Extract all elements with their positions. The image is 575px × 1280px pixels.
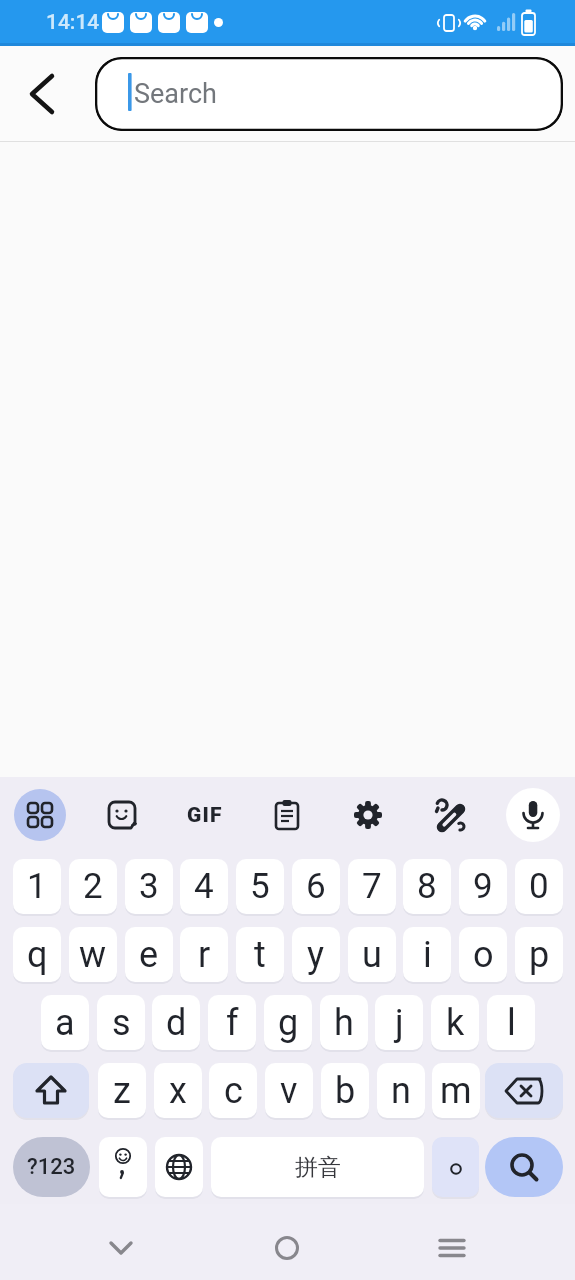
button[interactable]: x: [154, 1063, 202, 1118]
staticText: 14:14: [46, 10, 100, 35]
button[interactable]: [155, 1137, 203, 1197]
button[interactable]: [13, 1063, 89, 1118]
staticText: u: [362, 934, 382, 976]
button[interactable]: l: [487, 995, 535, 1050]
button[interactable]: q: [13, 927, 61, 982]
button[interactable]: j: [375, 995, 423, 1050]
button[interactable]: [263, 1224, 311, 1272]
button[interactable]: 8: [403, 859, 451, 914]
button[interactable]: [485, 1063, 563, 1118]
staticText: i: [423, 934, 432, 976]
staticText: 1: [27, 866, 47, 907]
staticText: n: [391, 1070, 411, 1112]
button[interactable]: y: [292, 927, 340, 982]
button[interactable]: 9: [459, 859, 507, 914]
button[interactable]: 1: [13, 859, 61, 914]
staticText: 5: [250, 866, 270, 907]
staticText: h: [334, 1002, 354, 1044]
button[interactable]: e: [125, 927, 173, 982]
button[interactable]: r: [180, 927, 228, 982]
button[interactable]: [99, 1137, 147, 1197]
staticText: y: [307, 934, 325, 976]
button[interactable]: u: [348, 927, 396, 982]
button[interactable]: 5: [236, 859, 284, 914]
staticText: d: [166, 1002, 187, 1044]
button[interactable]: [97, 1224, 145, 1272]
staticText: s: [112, 1002, 131, 1044]
button[interactable]: d: [152, 995, 200, 1050]
button[interactable]: 4: [180, 859, 228, 914]
staticText: e: [139, 934, 159, 976]
button[interactable]: k: [431, 995, 479, 1050]
button[interactable]: GIF: [180, 791, 230, 839]
staticText: o: [473, 934, 494, 976]
staticText: c: [224, 1070, 243, 1112]
staticText: z: [113, 1070, 131, 1112]
button[interactable]: [16, 74, 64, 114]
button[interactable]: a: [41, 995, 89, 1050]
staticText: 7: [362, 866, 382, 907]
staticText: k: [446, 1002, 465, 1044]
staticText: 4: [194, 866, 214, 907]
staticText: 2: [83, 866, 103, 907]
button[interactable]: [428, 1224, 476, 1272]
button[interactable]: b: [321, 1063, 369, 1118]
staticText: 拼音: [295, 1153, 341, 1182]
button[interactable]: p: [515, 927, 563, 982]
button[interactable]: n: [377, 1063, 425, 1118]
button[interactable]: w: [69, 927, 117, 982]
button[interactable]: [432, 1137, 479, 1197]
button[interactable]: [426, 791, 474, 839]
staticText: 9: [473, 866, 493, 907]
button[interactable]: t: [236, 927, 284, 982]
staticText: GIF: [187, 803, 223, 828]
button[interactable]: [14, 789, 66, 841]
button[interactable]: ?123: [13, 1137, 90, 1197]
staticText: v: [280, 1070, 298, 1112]
staticText: w: [79, 934, 107, 976]
button[interactable]: o: [459, 927, 507, 982]
staticText: 6: [306, 866, 326, 907]
button[interactable]: 0: [515, 859, 563, 914]
button[interactable]: i: [403, 927, 451, 982]
button[interactable]: [98, 791, 146, 839]
button[interactable]: 3: [125, 859, 173, 914]
button[interactable]: v: [265, 1063, 313, 1118]
staticText: f: [226, 1002, 239, 1044]
staticText: ?123: [27, 1154, 76, 1180]
staticText: r: [198, 934, 211, 976]
button[interactable]: 2: [69, 859, 117, 914]
staticText: a: [55, 1002, 75, 1044]
staticText: q: [27, 934, 48, 976]
staticText: j: [395, 1002, 404, 1044]
staticText: 8: [417, 866, 437, 907]
button[interactable]: [344, 791, 392, 839]
staticText: p: [529, 934, 550, 976]
button[interactable]: [263, 791, 311, 839]
button[interactable]: z: [98, 1063, 146, 1118]
button[interactable]: h: [320, 995, 368, 1050]
button[interactable]: s: [97, 995, 145, 1050]
staticText: 3: [139, 866, 159, 907]
button[interactable]: [506, 788, 560, 842]
staticText: x: [169, 1070, 187, 1112]
button[interactable]: 拼音: [211, 1137, 424, 1197]
button[interactable]: [485, 1137, 563, 1197]
staticText: t: [254, 934, 266, 976]
staticText: l: [507, 1002, 516, 1044]
button[interactable]: Search: [95, 57, 563, 131]
staticText: g: [278, 1002, 299, 1044]
staticText: b: [335, 1070, 356, 1112]
button[interactable]: g: [264, 995, 312, 1050]
staticText: m: [440, 1070, 472, 1112]
button[interactable]: 6: [292, 859, 340, 914]
staticText: 0: [529, 866, 549, 907]
button[interactable]: f: [208, 995, 256, 1050]
button[interactable]: 7: [348, 859, 396, 914]
staticText: Search: [134, 78, 217, 110]
button[interactable]: c: [209, 1063, 257, 1118]
button[interactable]: m: [432, 1063, 480, 1118]
